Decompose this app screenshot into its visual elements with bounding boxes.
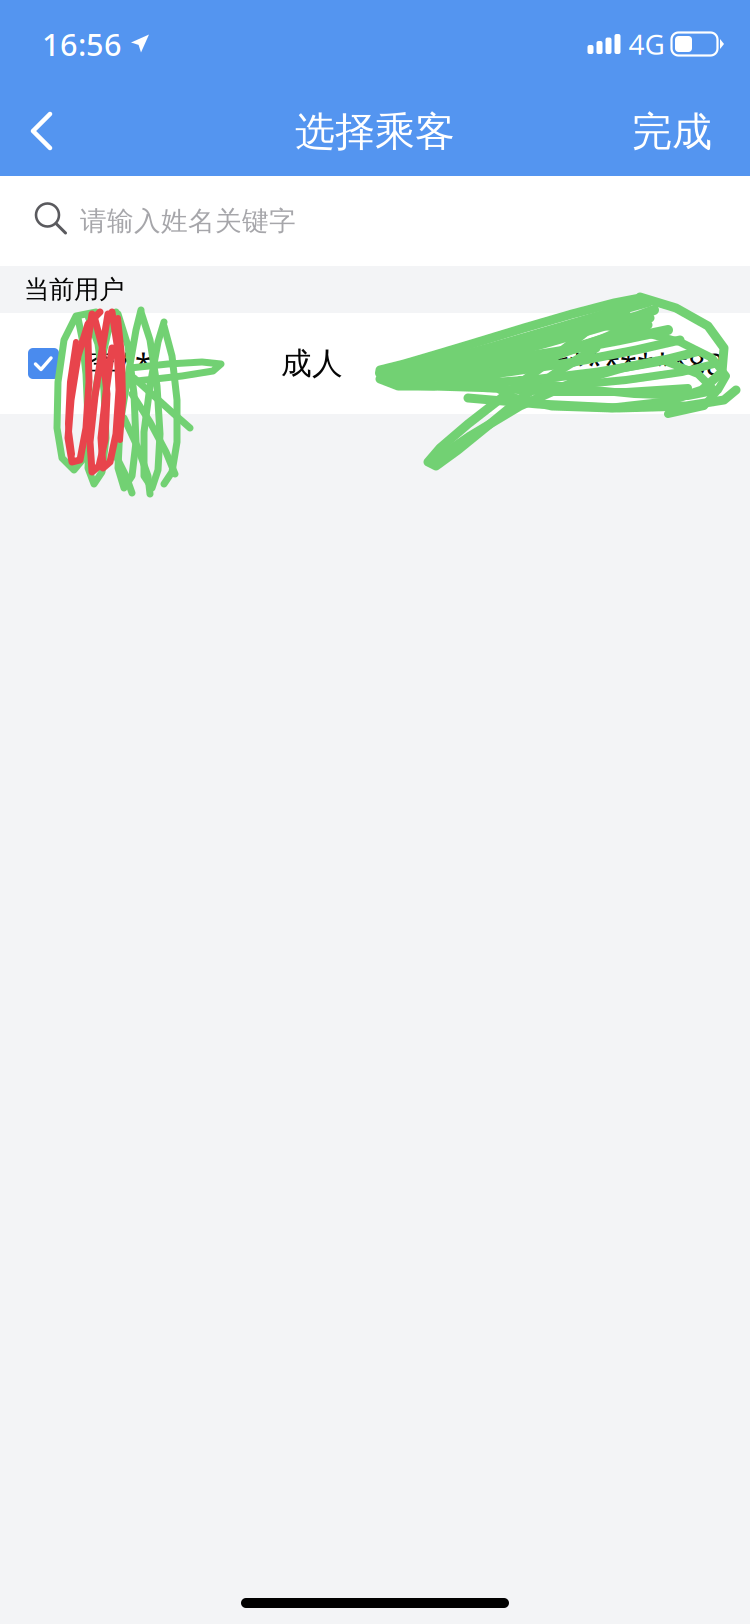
staticText: 当前用户 [24,274,124,305]
button[interactable]: 李** [0,313,750,414]
staticText: 请输入姓名关键字 [80,205,296,237]
staticText: 李** [87,343,152,384]
staticText: 6227**********88 [446,343,724,384]
staticText: 16:56 [42,24,122,64]
button[interactable]: 返回 [0,88,78,176]
staticText: 4G [628,25,664,63]
button[interactable]: 请输入姓名关键字 [0,176,750,266]
staticText: 选择乘客 [295,107,455,156]
button[interactable]: 完成 [606,88,750,176]
staticText: 完成 [632,107,712,156]
staticText: 成人 [281,345,343,382]
